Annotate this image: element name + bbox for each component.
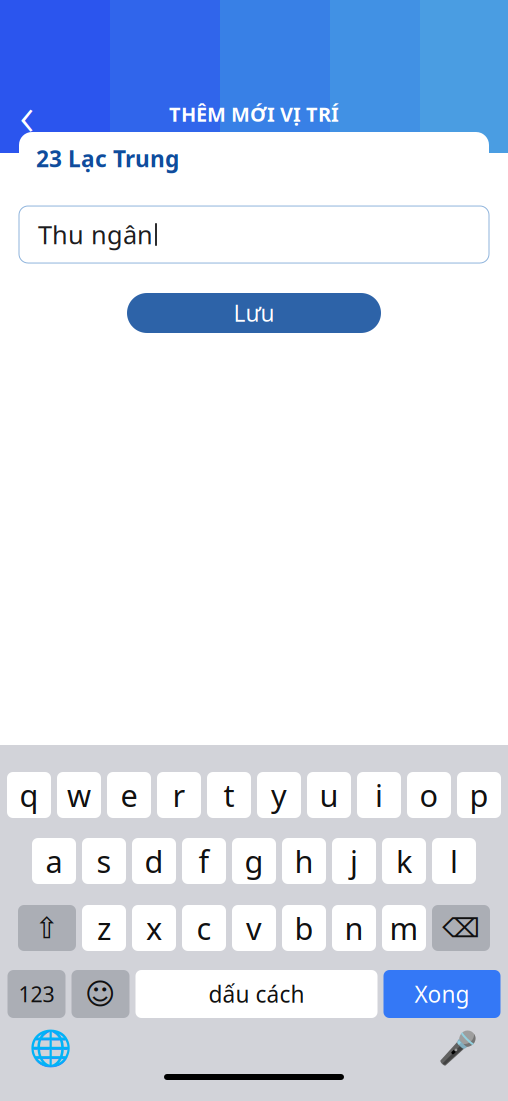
staticText: n [344, 908, 363, 948]
staticText: 🎤 [438, 1030, 478, 1066]
button[interactable]: Delete [432, 905, 490, 951]
button[interactable]: p [457, 772, 501, 818]
staticText: Thu ngân [38, 218, 153, 251]
button[interactable]: h [282, 838, 326, 884]
button[interactable]: Emoji [71, 970, 129, 1018]
button[interactable]: Next keyboard [28, 1026, 72, 1070]
button[interactable]: j [332, 838, 376, 884]
staticText: ⇧ [34, 911, 59, 945]
button[interactable]: t [207, 772, 251, 818]
staticText: l [450, 841, 458, 881]
button[interactable]: k [382, 838, 426, 884]
button[interactable]: o [407, 772, 451, 818]
staticText: m [389, 908, 418, 948]
button[interactable]: v [232, 905, 276, 951]
button[interactable]: dấu cách [135, 970, 377, 1018]
staticText: 🌐 [28, 1028, 71, 1068]
staticText: 123 [18, 980, 54, 1008]
staticText: s [96, 841, 111, 881]
staticText: y [271, 775, 287, 815]
staticText: x [146, 908, 162, 948]
button[interactable]: Dictation [436, 1026, 480, 1070]
staticText: o [419, 775, 438, 815]
button[interactable]: Lưu [127, 293, 381, 333]
staticText: u [319, 775, 338, 815]
staticText: j [350, 841, 358, 881]
staticText: q [19, 775, 38, 815]
staticText: c [196, 908, 211, 948]
button[interactable]: Back [0, 87, 54, 141]
staticText: i [375, 775, 383, 815]
staticText: ‹ [19, 77, 34, 151]
button[interactable]: Numbers [7, 970, 65, 1018]
button[interactable]: n [332, 905, 376, 951]
staticText: 23 Lạc Trung [36, 143, 179, 173]
button[interactable]: Xong [383, 970, 500, 1018]
staticText: r [172, 775, 185, 815]
button[interactable]: x [132, 905, 176, 951]
button[interactable]: Shift [18, 905, 76, 951]
button[interactable]: w [57, 772, 101, 818]
button[interactable]: u [307, 772, 351, 818]
staticText: THÊM MỚI VỊ TRÍ [169, 101, 339, 127]
staticText: ☺ [85, 977, 116, 1011]
button[interactable]: b [282, 905, 326, 951]
staticText: ⌫ [442, 913, 480, 943]
staticText: b [294, 908, 313, 948]
button[interactable]: r [157, 772, 201, 818]
staticText: Lưu [233, 298, 274, 328]
button[interactable]: f [182, 838, 226, 884]
staticText: f [198, 841, 209, 881]
button[interactable]: y [257, 772, 301, 818]
staticText: a [45, 841, 62, 881]
staticText: e [120, 775, 137, 815]
button[interactable]: l [432, 838, 476, 884]
staticText: t [223, 775, 234, 815]
staticText: dấu cách [208, 979, 304, 1009]
button[interactable]: q [7, 772, 51, 818]
staticText: k [396, 841, 412, 881]
button[interactable]: c [182, 905, 226, 951]
button[interactable]: g [232, 838, 276, 884]
staticText: g [244, 841, 263, 881]
button[interactable]: i [357, 772, 401, 818]
staticText: d [144, 841, 163, 881]
button[interactable]: s [82, 838, 126, 884]
button[interactable]: m [382, 905, 426, 951]
staticText: w [67, 775, 91, 815]
staticText: v [246, 908, 262, 948]
button[interactable]: z [82, 905, 126, 951]
button[interactable]: d [132, 838, 176, 884]
staticText: h [294, 841, 313, 881]
staticText: Xong [414, 979, 469, 1009]
staticText: z [97, 908, 111, 948]
staticText: p [469, 775, 488, 815]
button[interactable]: e [107, 772, 151, 818]
button[interactable]: a [32, 838, 76, 884]
